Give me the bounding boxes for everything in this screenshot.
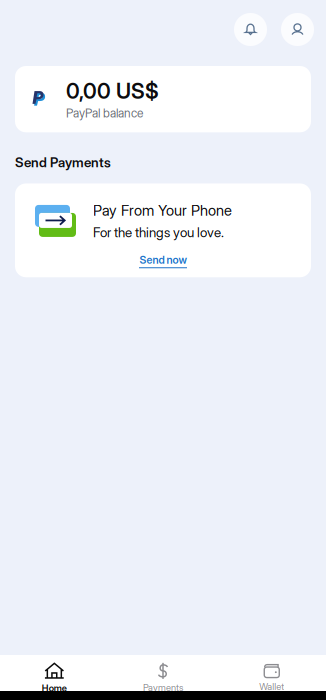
button[interactable]: Notifications xyxy=(234,13,267,46)
staticText: Home xyxy=(42,682,67,694)
staticText: Pay From Your Phone xyxy=(93,201,232,219)
staticText: Send now xyxy=(139,253,186,266)
staticText: PayPal balance xyxy=(66,106,143,120)
button[interactable]: Send now xyxy=(139,253,187,268)
button[interactable]: Home xyxy=(0,662,109,694)
staticText: For the things you love. xyxy=(93,224,224,240)
staticText: Payments xyxy=(143,682,183,693)
button[interactable]: Profile xyxy=(281,13,314,46)
staticText: Wallet xyxy=(259,681,284,692)
button[interactable]: Payments xyxy=(109,663,217,693)
button[interactable]: 0,00 US$ xyxy=(15,66,311,132)
staticText: 0,00 US$ xyxy=(66,78,159,104)
staticText: Send Payments xyxy=(15,154,111,170)
button[interactable]: Wallet xyxy=(217,664,326,692)
